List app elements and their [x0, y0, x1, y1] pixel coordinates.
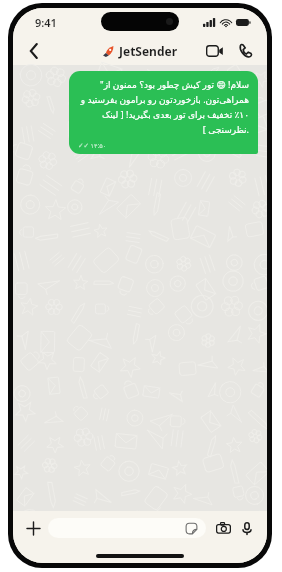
button[interactable]: "سلام! 😄 تور کیش چطور بود؟ ممنون از همرا… [69, 71, 258, 154]
button[interactable]: Sticker [48, 518, 206, 538]
button[interactable]: Video call [203, 40, 225, 62]
button[interactable]: Back [21, 38, 47, 64]
button[interactable]: Voice message [235, 516, 259, 540]
staticText: 9:41 [35, 15, 57, 30]
button[interactable]: Attach [21, 516, 45, 540]
staticText: ✓✓ ۱۴:۵۰ [78, 141, 107, 150]
button[interactable]: Sticker [183, 520, 199, 536]
staticText: "سلام! 😄 تور کیش چطور بود؟ ممنون از همرا… [78, 78, 249, 136]
staticText: JetSender [119, 43, 178, 59]
button[interactable]: JetSender [102, 43, 178, 59]
button[interactable]: Camera [211, 516, 235, 540]
button[interactable]: Voice call [235, 40, 257, 62]
